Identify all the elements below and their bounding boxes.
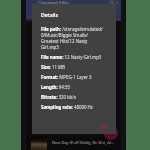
staticText: Details	[41, 11, 59, 18]
button[interactable]: OK	[99, 123, 110, 131]
staticText: Size: 11 MB	[41, 64, 104, 70]
button[interactable]: More options	[114, 0, 120, 6]
staticText: File name: 12 Nasty Girl.mp3	[41, 54, 104, 60]
staticText: Format: MPEG-1 Layer 3	[41, 74, 104, 80]
staticText: Length: 04:55	[41, 84, 104, 90]
button[interactable]: New Day (Puff Diddy, Dr. Dre, Al...	[26, 136, 121, 150]
staticText: New Day (Puff Diddy, Dr. Dre, Al...	[52, 140, 115, 145]
staticText: Sampling rate: 48000 Hz	[41, 104, 104, 110]
staticText: File path: /storage/emulated/0/Music/Big…	[41, 26, 104, 50]
button[interactable]: Play	[104, 126, 118, 140]
staticText: Bitrate: 320 kb/s	[41, 94, 104, 100]
staticText: Greatest Hits	[38, 0, 69, 7]
staticText: OK	[101, 124, 108, 130]
button[interactable]: Search	[109, 0, 115, 6]
